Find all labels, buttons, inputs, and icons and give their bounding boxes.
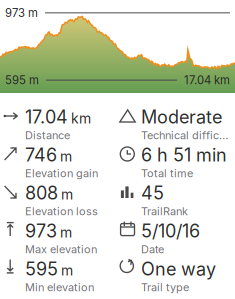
staticText: Elevation loss	[25, 205, 98, 218]
staticText: 6 h 51 min	[141, 144, 227, 166]
button[interactable]: 6 h 51 min	[120, 144, 220, 178]
staticText: TrailRank	[141, 205, 188, 218]
staticText: 973 m	[5, 6, 38, 20]
staticText: 17.04 km	[184, 73, 230, 87]
staticText: 595 m	[5, 73, 39, 87]
staticText: Moderate	[141, 106, 222, 128]
button[interactable]: 45	[120, 182, 220, 216]
staticText: Elevation gain	[25, 167, 98, 180]
button[interactable]: Moderate	[120, 106, 220, 140]
staticText: m	[60, 224, 72, 241]
button[interactable]: 17.04	[4, 106, 117, 140]
staticText: m	[60, 148, 72, 165]
button[interactable]: 973	[4, 220, 117, 254]
staticText: Date	[141, 243, 164, 256]
staticText: Total time	[141, 167, 193, 180]
staticText: m	[61, 262, 73, 279]
staticText: Min elevation	[25, 281, 94, 294]
staticText: km	[71, 110, 91, 127]
staticText: 595	[25, 258, 58, 280]
button[interactable]: One way	[120, 258, 220, 292]
staticText: m	[61, 186, 73, 203]
staticText: 17.04	[25, 106, 68, 128]
staticText: One way	[141, 258, 216, 280]
button[interactable]: 808	[4, 182, 117, 216]
staticText: 45	[141, 182, 164, 204]
button[interactable]: 5/10/16	[120, 220, 220, 254]
staticText: 5/10/16	[141, 220, 200, 242]
staticText: Max elevation	[25, 243, 97, 256]
staticText: 746	[25, 144, 57, 166]
button[interactable]: 595	[4, 258, 117, 292]
button[interactable]: 746	[4, 144, 117, 178]
staticText: 973	[25, 220, 57, 242]
staticText: Technical diffic…	[141, 129, 228, 142]
staticText: Trail type	[141, 281, 189, 294]
staticText: Distance	[25, 129, 70, 142]
staticText: 808	[25, 182, 58, 204]
